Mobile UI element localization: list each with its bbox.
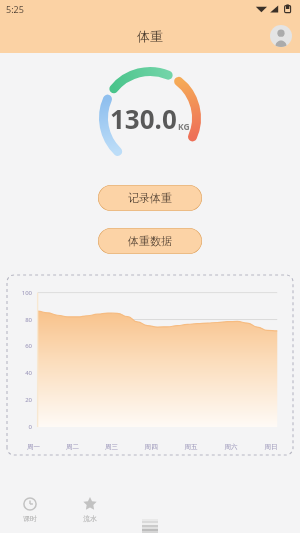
staticText: 周一 [14, 443, 53, 451]
staticText: 20 [7, 396, 32, 404]
staticText: 周五 [171, 443, 211, 451]
button[interactable]: 记录体重 [98, 185, 202, 211]
button[interactable]: 流水 [60, 486, 120, 533]
staticText: 体重数据 [128, 234, 172, 248]
staticText: 0 [7, 423, 32, 431]
button[interactable]: Gallery [120, 486, 180, 533]
staticText: KG [178, 121, 190, 133]
staticText: 周二 [53, 443, 92, 451]
staticText: 100 [7, 289, 32, 297]
staticText: 40 [7, 369, 32, 377]
button[interactable]: 体重数据 [98, 228, 202, 254]
staticText: 80 [7, 316, 32, 324]
staticText: 周四 [131, 443, 171, 451]
button[interactable]: 课时 [0, 486, 60, 533]
staticText: 周三 [92, 443, 131, 451]
button[interactable]: Profile [270, 25, 292, 47]
staticText: 记录体重 [128, 191, 172, 205]
staticText: 周日 [251, 443, 291, 451]
staticText: 课时 [23, 514, 37, 523]
staticText: 5:25 [6, 3, 24, 15]
staticText: 体重 [137, 28, 163, 44]
staticText: 周六 [211, 443, 251, 451]
staticText: 流水 [83, 514, 97, 523]
staticText: 130.0 [110, 101, 177, 136]
staticText: 60 [7, 342, 32, 350]
